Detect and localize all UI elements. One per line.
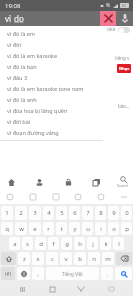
button[interactable]: m	[102, 252, 114, 265]
button[interactable]: Backspace	[116, 252, 132, 265]
staticText: vì đời	[7, 41, 21, 48]
staticText: Search	[117, 183, 129, 188]
staticText: vì đời bài	[7, 118, 31, 125]
button[interactable]: Hide keyboard	[74, 282, 88, 296]
staticText: vì đó là em karaoke	[7, 52, 58, 59]
staticText: bàn...	[118, 103, 130, 109]
button[interactable]: Home	[45, 282, 59, 296]
button[interactable]: Clear	[100, 11, 116, 26]
button[interactable]: e	[29, 222, 41, 235]
button[interactable]: s	[22, 237, 33, 250]
button[interactable]: Recents	[15, 282, 29, 296]
button[interactable]: c	[46, 252, 58, 265]
staticText: w	[19, 225, 24, 233]
button[interactable]: p	[121, 222, 132, 235]
button[interactable]: l	[113, 237, 124, 250]
staticText: h	[78, 240, 82, 248]
button[interactable]: 2	[15, 206, 27, 220]
button[interactable]: 7	[82, 206, 93, 220]
button[interactable]: vì đó là em karaoke	[0, 50, 103, 61]
button[interactable]: Shop	[61, 175, 75, 189]
button[interactable]: Tabs	[89, 175, 103, 189]
staticText: u	[86, 225, 90, 233]
staticText: %	[106, 2, 111, 9]
button[interactable]: Voice search	[116, 11, 133, 26]
button[interactable]: z	[18, 252, 30, 265]
staticText: !#1	[5, 271, 12, 277]
button[interactable]: vì đời	[0, 39, 103, 50]
button[interactable]: vì đoạn đường vắng	[0, 127, 103, 138]
button[interactable]: Toggle	[118, 27, 130, 33]
button[interactable]: n	[88, 252, 100, 265]
staticText: b	[78, 255, 82, 263]
staticText: j	[92, 240, 94, 248]
button[interactable]: Search	[115, 267, 132, 280]
button[interactable]: 6	[69, 206, 80, 220]
button[interactable]: 4	[43, 206, 54, 220]
button[interactable]: d	[35, 237, 46, 250]
button[interactable]: Nhạc	[117, 64, 131, 73]
staticText: vì đó là bạn	[7, 63, 37, 70]
staticText: q	[5, 225, 9, 233]
button[interactable]: vì đâu 3	[0, 72, 103, 83]
button[interactable]: f	[48, 237, 59, 250]
button[interactable]: 9	[108, 206, 119, 220]
staticText: tiếng v	[115, 55, 130, 61]
button[interactable]: Keyboard layout	[104, 282, 118, 296]
button[interactable]: y	[69, 222, 80, 235]
button[interactable]: u	[82, 222, 93, 235]
button[interactable]: Action 2	[51, 192, 60, 201]
button[interactable]: Shift	[1, 252, 16, 265]
button[interactable]: 0	[121, 206, 132, 220]
button[interactable]: j	[87, 237, 98, 250]
button[interactable]: o	[108, 222, 119, 235]
button[interactable]: ,	[32, 267, 44, 280]
button[interactable]: b	[74, 252, 86, 265]
button[interactable]: k	[100, 237, 111, 250]
button[interactable]: vì đó là bạn	[0, 61, 103, 72]
button[interactable]: g	[61, 237, 72, 250]
button[interactable]: Language	[17, 267, 30, 280]
staticText: ,	[37, 270, 39, 278]
staticText: vì đó là em karaoke tone nam	[7, 85, 84, 92]
button[interactable]: a	[9, 237, 20, 250]
button[interactable]: w	[15, 222, 27, 235]
button[interactable]: Search	[117, 176, 129, 188]
button[interactable]: Home	[4, 175, 18, 189]
button[interactable]: Account	[32, 175, 46, 189]
staticText: Tiếng Việt	[62, 271, 83, 277]
button[interactable]: Symbols	[1, 267, 15, 280]
button[interactable]: q	[1, 222, 13, 235]
staticText: l	[118, 240, 120, 248]
button[interactable]: x	[32, 252, 44, 265]
button[interactable]: v	[60, 252, 72, 265]
staticText: r	[47, 225, 50, 233]
button[interactable]: Action 4	[96, 192, 105, 201]
button[interactable]: Action 0	[5, 192, 14, 201]
staticText: p	[125, 225, 129, 233]
button[interactable]: t	[56, 222, 67, 235]
staticText: 82	[122, 3, 127, 8]
button[interactable]: .	[101, 267, 113, 280]
button[interactable]: vì đó là anh	[0, 94, 103, 105]
button[interactable]: 8	[95, 206, 106, 220]
staticText: t	[60, 225, 63, 233]
button[interactable]: vì đó là em	[0, 28, 103, 39]
button[interactable]: 3	[29, 206, 41, 220]
button[interactable]: vì đóa hoa bị lãng quên	[0, 105, 103, 116]
button[interactable]: Action 5	[119, 192, 128, 201]
button[interactable]: Action 1	[28, 192, 37, 201]
staticText: do	[14, 13, 24, 24]
button[interactable]: h	[74, 237, 85, 250]
staticText: 9	[112, 209, 116, 217]
button[interactable]: i	[95, 222, 106, 235]
button[interactable]: Tiếng Việt	[46, 267, 99, 280]
button[interactable]: vì đời bài	[0, 116, 103, 127]
button[interactable]: r	[43, 222, 54, 235]
button[interactable]: 1	[1, 206, 13, 220]
staticText: 0	[125, 209, 129, 217]
button[interactable]: 5	[56, 206, 67, 220]
staticText: vì đâu 3	[7, 74, 28, 81]
button[interactable]: Action 3	[73, 192, 82, 201]
button[interactable]: vì đó là em karaoke tone nam	[0, 83, 103, 94]
